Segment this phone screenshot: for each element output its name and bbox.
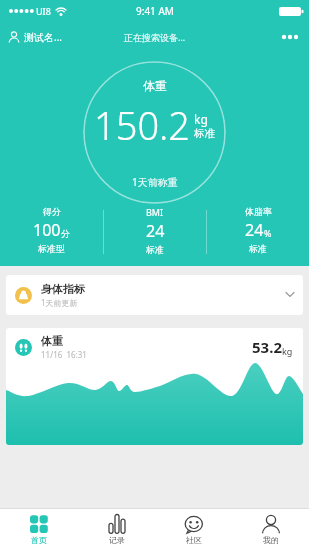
button[interactable]: 身体指标 xyxy=(6,275,303,315)
staticText: 体脂率 xyxy=(245,206,272,217)
staticText: 正在搜索设备… xyxy=(124,31,186,43)
staticText: 53.2 xyxy=(252,337,282,357)
staticText: 首页 xyxy=(31,535,47,545)
staticText: 得分 xyxy=(43,206,61,217)
staticText: BMI xyxy=(146,206,164,218)
staticText: 1天前称重 xyxy=(132,175,178,189)
staticText: 1天前更新 xyxy=(41,297,78,308)
staticText: 标准 xyxy=(194,127,215,140)
staticText: UI8 xyxy=(36,5,51,17)
staticText: 9:41 AM xyxy=(136,4,174,18)
button[interactable]: 体重 xyxy=(83,61,226,204)
button[interactable]: 我的 xyxy=(232,509,309,550)
staticText: 分 xyxy=(61,228,70,239)
staticText: kg xyxy=(194,111,208,127)
staticText: 11/16 16:31 xyxy=(41,349,87,360)
button[interactable]: 测试名… xyxy=(8,30,62,44)
staticText: 身体指标 xyxy=(41,282,85,296)
button[interactable]: 首页 xyxy=(0,509,78,550)
button[interactable] xyxy=(281,34,299,40)
staticText: 100 xyxy=(33,219,61,241)
button[interactable]: 社区 xyxy=(155,509,232,550)
staticText: 我的 xyxy=(263,535,279,545)
staticText: 测试名… xyxy=(24,30,62,44)
button[interactable]: 记录 xyxy=(78,509,155,550)
staticText: kg xyxy=(282,345,293,357)
staticText: 标准型 xyxy=(38,243,65,254)
staticText: 标准 xyxy=(146,244,164,255)
button[interactable]: 体重 xyxy=(6,328,303,445)
staticText: 体重 xyxy=(41,334,63,348)
staticText: 记录 xyxy=(109,535,125,545)
staticText: 150.2 xyxy=(94,99,191,151)
staticText: 体重 xyxy=(143,78,167,93)
staticText: 24 xyxy=(146,220,165,242)
staticText: 社区 xyxy=(186,535,202,545)
staticText: 标准 xyxy=(249,243,267,254)
staticText: 24 xyxy=(245,219,264,241)
staticText: % xyxy=(264,227,272,239)
